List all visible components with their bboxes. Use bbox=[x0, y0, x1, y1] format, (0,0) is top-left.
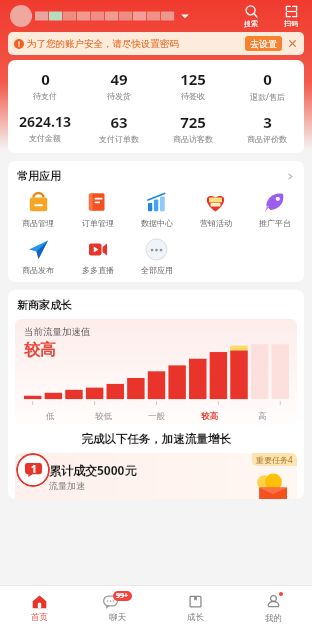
staticText: 0 bbox=[41, 69, 50, 89]
staticText: 数据中心 bbox=[141, 218, 173, 228]
button[interactable]: 订单管理 bbox=[68, 190, 127, 228]
staticText: 退款/售后 bbox=[250, 91, 285, 102]
staticText: 扫码 bbox=[284, 19, 298, 28]
staticText: 去设置 bbox=[250, 38, 277, 49]
button[interactable]: 营销活动 bbox=[186, 190, 245, 228]
button[interactable]: 3 bbox=[230, 112, 304, 144]
button[interactable]: 99+ bbox=[78, 586, 156, 630]
button[interactable]: Switch shop bbox=[179, 10, 191, 22]
button[interactable]: Task step 1 bbox=[16, 453, 50, 487]
staticText: 为了您的账户安全，请尽快设置密码 bbox=[27, 38, 179, 50]
button[interactable]: 63 bbox=[82, 112, 156, 144]
button[interactable]: 125 bbox=[156, 69, 230, 101]
staticText: 当前流量加速值 bbox=[24, 326, 91, 338]
staticText: 一般 bbox=[148, 411, 165, 422]
staticText: 3 bbox=[263, 112, 272, 132]
button[interactable]: 2624.13 bbox=[8, 112, 82, 143]
button[interactable]: 0 bbox=[8, 60, 304, 153]
staticText: 营销活动 bbox=[200, 218, 232, 228]
staticText: 流量加速 bbox=[49, 480, 85, 491]
button[interactable]: 我的 bbox=[234, 586, 312, 630]
staticText: 待发货 bbox=[107, 91, 131, 101]
button[interactable]: 成长 bbox=[156, 586, 234, 630]
button[interactable]: 商品管理 bbox=[8, 190, 68, 228]
staticText: 低 bbox=[46, 411, 55, 422]
staticText: 高 bbox=[258, 411, 267, 422]
staticText: 订单管理 bbox=[82, 218, 114, 228]
button[interactable]: 常用应用 bbox=[8, 169, 304, 183]
staticText: 商品发布 bbox=[22, 265, 54, 275]
button[interactable]: 全部应用 bbox=[127, 237, 186, 275]
staticText: 1 bbox=[31, 462, 37, 476]
button[interactable]: 49 bbox=[82, 69, 156, 101]
button[interactable]: 扫码 bbox=[276, 4, 306, 28]
staticText: 常用应用 bbox=[17, 169, 61, 183]
button[interactable]: Shop name bbox=[35, 9, 175, 23]
staticText: 完成以下任务，加速流量增长 bbox=[8, 432, 304, 446]
button[interactable]: 0 bbox=[8, 69, 82, 101]
staticText: 125 bbox=[180, 69, 206, 89]
button[interactable]: 725 bbox=[156, 112, 230, 144]
staticText: 商品访客数 bbox=[173, 134, 213, 144]
staticText: 全部应用 bbox=[141, 265, 173, 275]
staticText: 商品管理 bbox=[22, 218, 54, 228]
button[interactable]: 当前流量加速值 bbox=[15, 319, 297, 424]
staticText: 成长 bbox=[187, 612, 204, 623]
staticText: 首页 bbox=[31, 612, 48, 623]
staticText: 搜索 bbox=[244, 19, 258, 28]
staticText: 支付金额 bbox=[29, 133, 61, 143]
button[interactable]: 为了您的账户安全，请尽快设置密码 bbox=[8, 32, 304, 55]
staticText: 待支付 bbox=[33, 91, 57, 101]
button[interactable]: 搜索 bbox=[236, 4, 266, 28]
staticText: 0 bbox=[263, 69, 272, 89]
staticText: 2624.13 bbox=[19, 112, 71, 131]
staticText: 63 bbox=[110, 112, 128, 132]
staticText: 推广平台 bbox=[259, 218, 291, 228]
button[interactable]: 商品发布 bbox=[8, 237, 68, 275]
staticText: 49 bbox=[110, 69, 128, 89]
staticText: 聊天 bbox=[109, 612, 126, 623]
staticText: 较高 bbox=[24, 340, 56, 360]
staticText: 较高 bbox=[201, 411, 218, 422]
button[interactable]: 累计成交5000元 bbox=[15, 453, 297, 499]
staticText: 多多直播 bbox=[82, 265, 114, 275]
staticText: 重要任务4 bbox=[256, 454, 293, 465]
button[interactable]: 去设置 bbox=[245, 36, 282, 51]
staticText: 累计成交5000元 bbox=[49, 462, 137, 478]
button[interactable]: 首页 bbox=[0, 586, 78, 630]
staticText: 我的 bbox=[265, 613, 282, 624]
staticText: 待签收 bbox=[181, 91, 205, 101]
button[interactable]: 0 bbox=[230, 69, 304, 102]
button[interactable]: 数据中心 bbox=[127, 190, 186, 228]
staticText: 商品评价数 bbox=[247, 134, 287, 144]
button[interactable]: 多多直播 bbox=[68, 237, 127, 275]
staticText: 新商家成长 bbox=[17, 298, 72, 312]
button[interactable]: Close bbox=[287, 38, 298, 49]
staticText: 较低 bbox=[95, 411, 112, 422]
staticText: 99+ bbox=[116, 591, 129, 601]
staticText: 支付订单数 bbox=[99, 134, 139, 144]
staticText: 725 bbox=[180, 112, 206, 132]
button[interactable]: 推广平台 bbox=[245, 190, 304, 228]
button[interactable]: Shop avatar bbox=[10, 5, 32, 27]
